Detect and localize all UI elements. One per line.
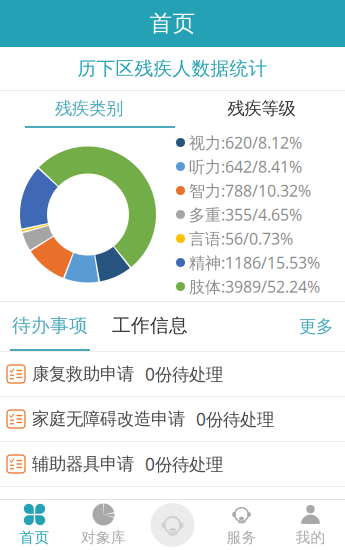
staticText: 0份待处理 xyxy=(145,362,223,385)
button[interactable]: 辅助器具申请 xyxy=(0,442,345,487)
staticText: 精神:1186/15.53% xyxy=(189,252,320,273)
staticText: 肢体:3989/52.24% xyxy=(189,276,320,297)
staticText: 多重:355/4.65% xyxy=(189,204,302,225)
button[interactable]: 更多 xyxy=(299,302,345,351)
staticText: 听力:642/8.41% xyxy=(189,156,302,177)
staticText: 0份待处理 xyxy=(162,497,240,520)
button[interactable]: 待办事项 xyxy=(0,302,100,351)
button[interactable]: 工作信息 xyxy=(100,302,200,351)
staticText: 0份待处理 xyxy=(196,407,274,430)
staticText: 0份待处理 xyxy=(145,452,223,475)
staticText: 历下区残疾人数据统计 xyxy=(77,57,267,80)
staticText: 视力:620/8.12% xyxy=(189,132,302,153)
button[interactable]: 服务 xyxy=(207,500,276,550)
button[interactable]: 康复救助申请 xyxy=(0,352,345,397)
button[interactable]: 首页 xyxy=(0,500,69,550)
button[interactable]: 残疾类别 xyxy=(0,91,178,128)
staticText: 无障碍设施申请 xyxy=(32,498,151,520)
staticText: 首页 xyxy=(149,10,195,37)
button[interactable]: 对象库 xyxy=(69,500,138,550)
staticText: 工作信息 xyxy=(112,314,188,337)
button[interactable]: 客服 xyxy=(138,500,207,550)
button[interactable]: 家庭无障碍改造申请 xyxy=(0,397,345,442)
staticText: 服务 xyxy=(226,528,256,546)
button[interactable]: 残疾等级 xyxy=(178,91,345,128)
button[interactable]: 我的 xyxy=(276,500,345,550)
staticText: 残疾类别 xyxy=(55,98,123,119)
staticText: 对象库 xyxy=(81,528,126,546)
staticText: 残疾等级 xyxy=(227,98,295,119)
staticText: 智力:788/10.32% xyxy=(189,180,311,201)
staticText: 我的 xyxy=(295,528,325,546)
staticText: 更多 xyxy=(299,316,333,337)
button[interactable]: 无障碍设施申请 xyxy=(0,487,345,532)
staticText: 首页 xyxy=(19,528,49,546)
staticText: 辅助器具申请 xyxy=(32,453,134,475)
staticText: 家庭无障碍改造申请 xyxy=(32,408,185,430)
staticText: 待办事项 xyxy=(12,314,88,337)
staticText: 康复救助申请 xyxy=(32,363,134,385)
staticText: 言语:56/0.73% xyxy=(189,228,293,249)
